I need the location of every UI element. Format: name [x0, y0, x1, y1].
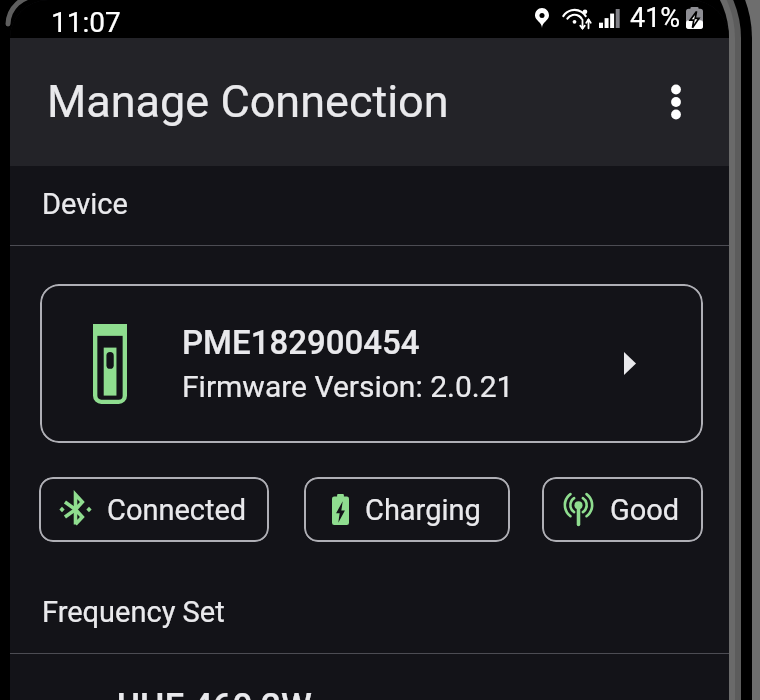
staticText: Charging: [365, 493, 481, 527]
button[interactable]: PME182900454: [40, 284, 703, 443]
button[interactable]: Charging: [304, 477, 510, 542]
staticText: Manage Connection: [47, 75, 449, 128]
staticText: Connected: [107, 493, 247, 527]
other: Signal: [599, 9, 620, 28]
other: Wi-Fi: [565, 8, 590, 29]
staticText: Firmware Version: 2.0.21: [182, 369, 514, 404]
staticText: Frequency Set: [42, 595, 225, 629]
button[interactable]: UHF 460 2W: [10, 654, 729, 700]
staticText: Good: [610, 493, 680, 527]
staticText: Device: [42, 187, 128, 221]
button[interactable]: Good: [542, 477, 703, 542]
staticText: UHF 460 2W: [117, 686, 312, 700]
staticText: 41%: [630, 2, 681, 34]
button[interactable]: More options: [648, 74, 704, 130]
other: Location: [535, 8, 549, 28]
button[interactable]: Connected: [39, 477, 269, 542]
other: Battery charging: [686, 7, 703, 29]
staticText: 11:07: [51, 6, 121, 39]
staticText: PME182900454: [182, 323, 420, 362]
